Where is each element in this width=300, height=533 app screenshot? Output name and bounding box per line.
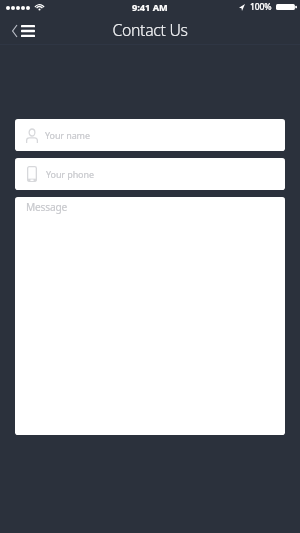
staticText: Your name [45, 129, 90, 141]
staticText: Contact Us [112, 19, 188, 41]
button[interactable]: Your name [15, 119, 285, 151]
staticText: Your phone [46, 168, 94, 180]
staticText: 9:41 AM [132, 1, 168, 14]
button[interactable]: Your phone [15, 158, 285, 190]
staticText: Message [26, 200, 68, 214]
staticText: 100% [250, 1, 272, 13]
button[interactable]: Open navigation menu [0, 14, 46, 44]
